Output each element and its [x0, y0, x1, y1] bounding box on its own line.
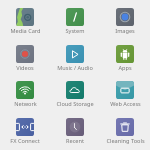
- button[interactable]: Music / Audio: [50, 37, 100, 74]
- staticText: Images: [115, 27, 135, 35]
- staticText: System: [65, 27, 85, 35]
- button[interactable]: Network: [0, 73, 50, 110]
- button[interactable]: Recent: [50, 110, 100, 147]
- staticText: Videos: [16, 64, 34, 72]
- button[interactable]: Media Card: [0, 0, 50, 37]
- staticText: Music / Audio: [57, 64, 93, 72]
- staticText: Media Card: [10, 27, 41, 35]
- button[interactable]: Videos: [0, 37, 50, 74]
- staticText: Apps: [118, 64, 132, 72]
- staticText: FX Connect: [10, 137, 40, 145]
- staticText: Recent: [66, 137, 84, 145]
- staticText: Cleaning Tools: [106, 137, 145, 145]
- button[interactable]: Web Access: [100, 73, 150, 110]
- staticText: Web Access: [110, 100, 141, 108]
- button[interactable]: FX Connect: [0, 110, 50, 147]
- staticText: Cloud Storage: [56, 100, 94, 108]
- button[interactable]: Images: [100, 0, 150, 37]
- button[interactable]: Apps: [100, 37, 150, 74]
- button[interactable]: Cleaning Tools: [100, 110, 150, 147]
- button[interactable]: Cloud Storage: [50, 73, 100, 110]
- button[interactable]: System: [50, 0, 100, 37]
- staticText: Network: [14, 100, 37, 108]
